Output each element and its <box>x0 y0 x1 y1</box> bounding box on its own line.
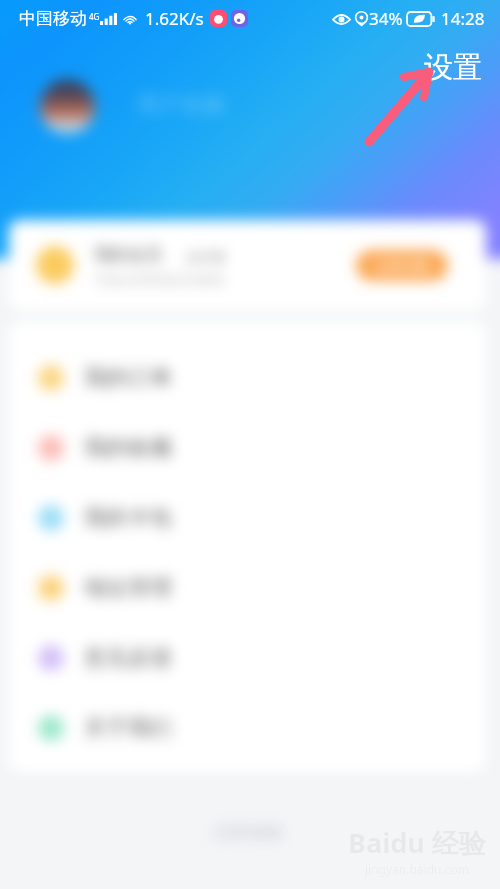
button[interactable]: 立即开通 <box>356 250 448 281</box>
staticText: 意见反馈 <box>84 644 172 672</box>
staticText: 1.62K/s <box>145 7 204 30</box>
button[interactable]: 我的卡包 <box>9 483 486 553</box>
staticText: 设置 <box>424 49 482 86</box>
button[interactable]: 我的会员 <box>9 220 486 310</box>
staticText: Baidu 经验 <box>348 824 486 861</box>
button[interactable]: 地址管理 <box>9 553 486 623</box>
staticText: 我的收藏 <box>84 434 172 462</box>
staticText: 我的卡包 <box>84 504 172 532</box>
staticText: 34% <box>369 7 403 30</box>
staticText: 我的订单 <box>84 364 172 392</box>
button[interactable]: 意见反馈 <box>9 623 486 693</box>
staticText: 中国移动 <box>19 8 87 29</box>
staticText: 地址管理 <box>84 574 172 602</box>
staticText: 关于我们 <box>84 714 172 742</box>
button[interactable]: Profile photo <box>40 79 95 134</box>
staticText: 14:28 <box>441 7 485 30</box>
staticText: 用户名称 <box>137 91 225 119</box>
staticText: 4G <box>89 11 100 22</box>
staticText: 我的会员 <box>94 244 162 265</box>
button[interactable]: 我的订单 <box>9 343 486 413</box>
button[interactable]: 关于我们 <box>9 693 486 763</box>
button[interactable]: 设置 <box>424 49 482 86</box>
staticText: 未开通 <box>186 249 225 265</box>
staticText: 立即开通 <box>376 258 428 274</box>
button[interactable]: 我的收藏 <box>9 413 486 483</box>
